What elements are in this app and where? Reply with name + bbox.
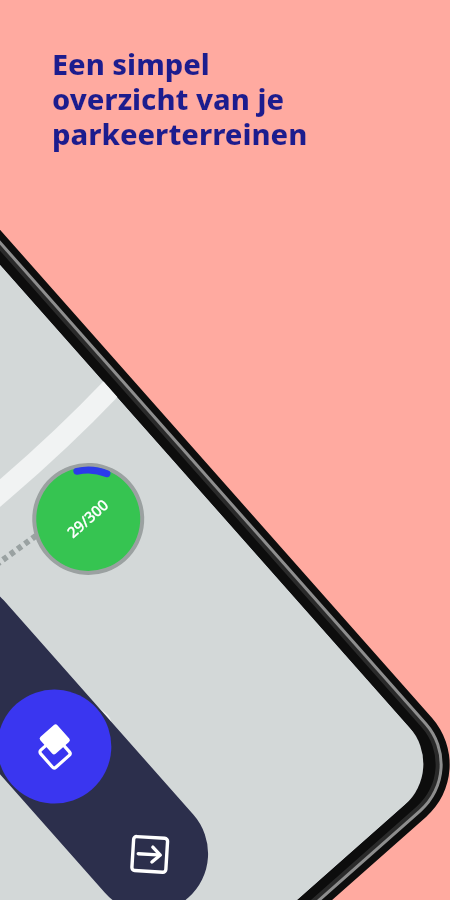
button[interactable]: Inchecken	[119, 823, 181, 885]
staticText: Een simpel overzicht van je parkeerterre…	[52, 44, 308, 154]
staticText: 29/300	[48, 482, 128, 556]
button[interactable]: 29 van 300 plaatsen bezet	[48, 482, 128, 556]
button[interactable]: Lagen	[16, 709, 92, 785]
